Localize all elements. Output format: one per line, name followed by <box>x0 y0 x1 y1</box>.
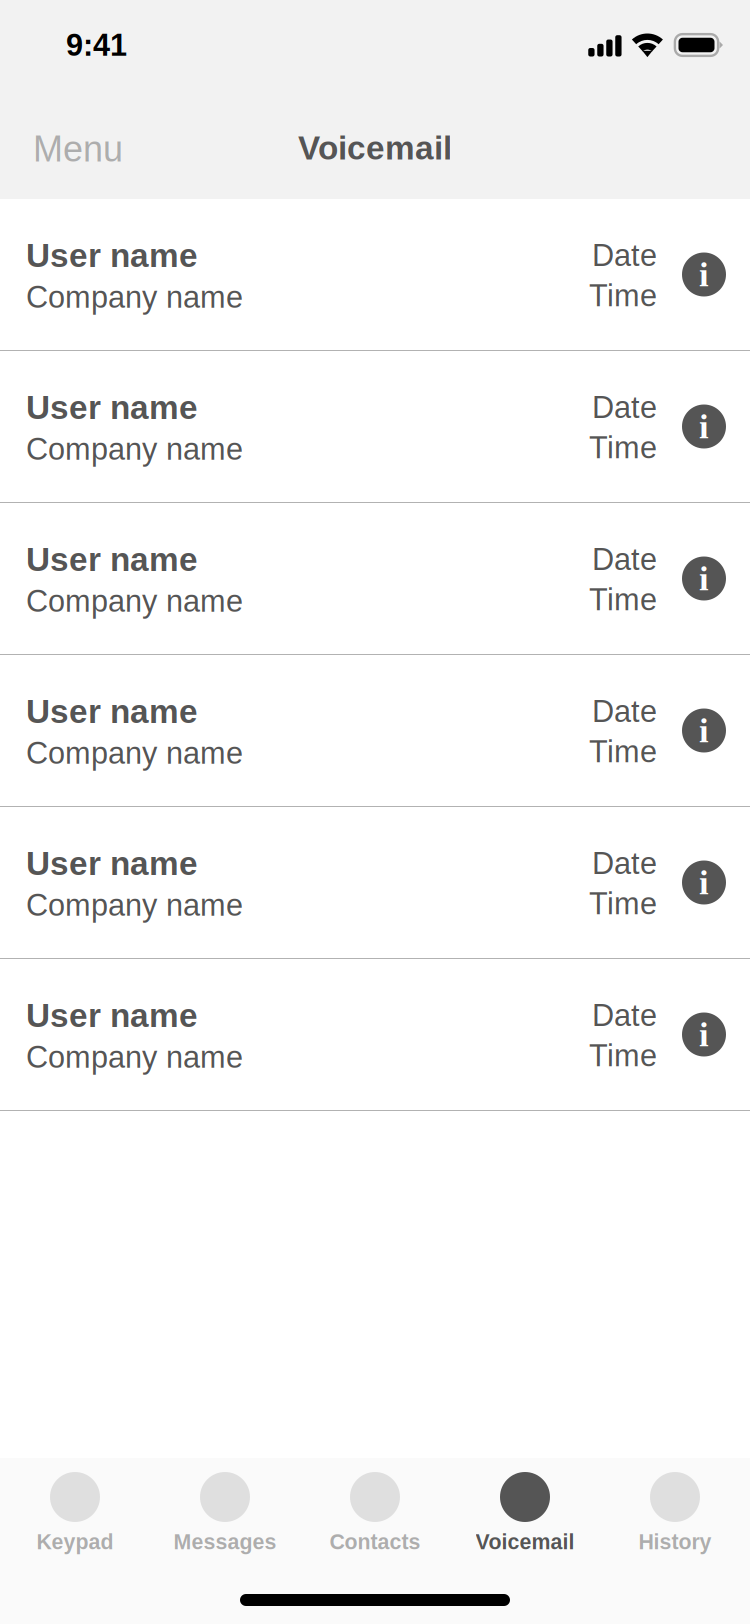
staticText: Time <box>589 278 657 313</box>
staticText: Date <box>592 542 657 576</box>
staticText: Date <box>592 998 657 1032</box>
staticText: Company name <box>26 584 243 618</box>
button[interactable]: More info <box>682 556 750 600</box>
staticText: Company name <box>26 432 243 466</box>
button[interactable]: Messages <box>150 1472 300 1554</box>
button[interactable]: User name <box>0 655 750 806</box>
staticText: Keypad <box>36 1530 113 1554</box>
staticText: Voicemail <box>475 1530 574 1554</box>
staticText: Contacts <box>329 1530 420 1554</box>
staticText: Voicemail <box>298 129 452 167</box>
button[interactable]: More info <box>682 1012 750 1056</box>
button[interactable]: User name <box>0 503 750 654</box>
staticText: i <box>699 711 709 750</box>
staticText: i <box>699 863 709 902</box>
staticText: Time <box>589 430 657 465</box>
staticText: User name <box>26 389 198 426</box>
staticText: Company name <box>26 1040 243 1074</box>
staticText: Date <box>592 846 657 880</box>
button[interactable]: More info <box>682 404 750 448</box>
button[interactable]: User name <box>0 959 750 1110</box>
staticText: Menu <box>33 129 123 169</box>
staticText: Time <box>589 886 657 921</box>
button[interactable]: Contacts <box>300 1472 450 1554</box>
button[interactable]: More info <box>682 708 750 752</box>
button[interactable]: More info <box>682 252 750 296</box>
button[interactable]: Menu <box>0 90 147 199</box>
staticText: Time <box>589 734 657 769</box>
staticText: Messages <box>173 1530 276 1554</box>
staticText: 9:41 <box>66 28 127 62</box>
button[interactable]: History <box>600 1472 750 1554</box>
button[interactable]: User name <box>0 807 750 958</box>
button[interactable]: More info <box>682 860 750 904</box>
staticText: User name <box>26 845 198 882</box>
staticText: i <box>699 1015 709 1054</box>
staticText: User name <box>26 997 198 1034</box>
staticText: i <box>699 559 709 598</box>
staticText: Date <box>592 390 657 424</box>
staticText: Date <box>592 238 657 272</box>
staticText: Time <box>589 582 657 617</box>
staticText: User name <box>26 693 198 730</box>
staticText: i <box>699 407 709 446</box>
staticText: Company name <box>26 888 243 922</box>
button[interactable]: User name <box>0 199 750 350</box>
staticText: i <box>699 255 709 294</box>
staticText: Company name <box>26 280 243 314</box>
button[interactable]: User name <box>0 351 750 502</box>
staticText: Time <box>589 1038 657 1073</box>
staticText: User name <box>26 541 198 578</box>
staticText: Company name <box>26 736 243 770</box>
button[interactable]: Keypad <box>0 1472 150 1554</box>
button[interactable]: Voicemail <box>450 1472 600 1554</box>
staticText: History <box>638 1530 711 1554</box>
staticText: Date <box>592 694 657 728</box>
staticText: User name <box>26 237 198 274</box>
